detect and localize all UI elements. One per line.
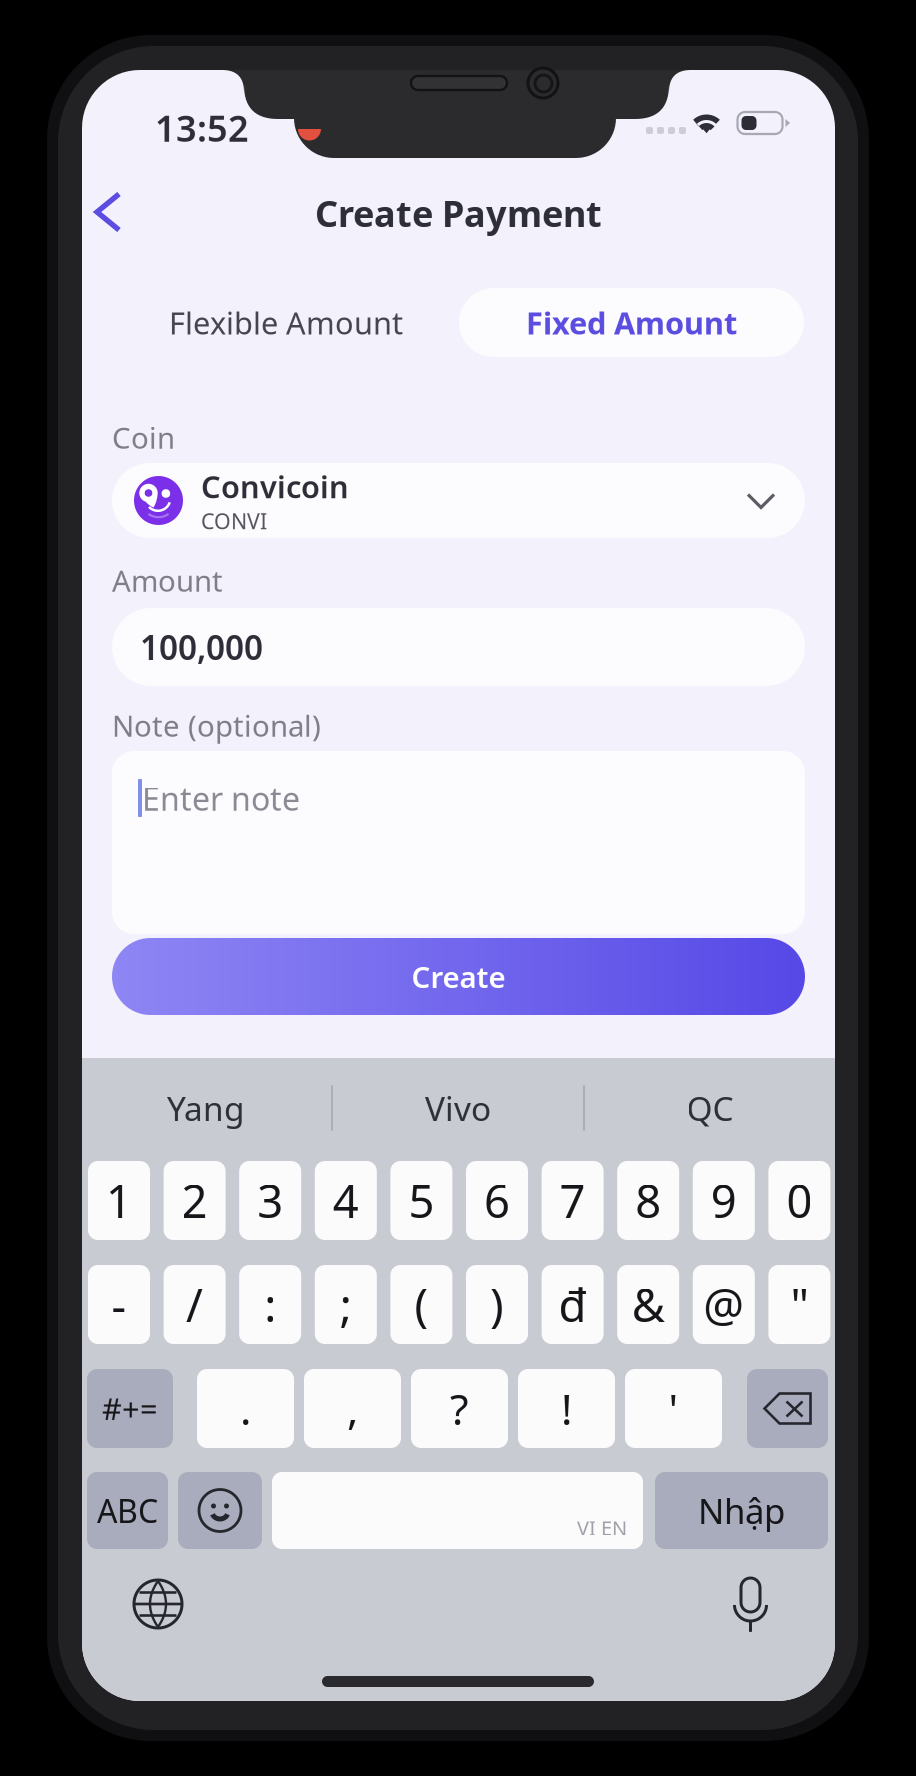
staticText: ABC: [97, 1489, 158, 1532]
button[interactable]: QC: [586, 1058, 834, 1158]
button[interactable]: !: [518, 1369, 615, 1448]
staticText: 7: [560, 1170, 586, 1231]
staticText: 6: [484, 1170, 510, 1231]
button[interactable]: 0: [768, 1161, 830, 1240]
staticText: Vivo: [425, 1086, 491, 1130]
button[interactable]: Convicoin: [112, 463, 805, 538]
staticText: 1: [106, 1170, 132, 1231]
button[interactable]: Back: [76, 173, 140, 251]
staticText: .: [240, 1380, 251, 1437]
staticText: /: [186, 1274, 203, 1335]
button[interactable]: ": [768, 1265, 830, 1344]
staticText: Flexible Amount: [169, 302, 403, 343]
button[interactable]: Yang: [82, 1058, 330, 1158]
staticText: QC: [686, 1086, 733, 1130]
staticText: Coin: [112, 418, 175, 457]
button[interactable]: Dictate: [727, 1574, 775, 1630]
staticText: ?: [450, 1380, 469, 1437]
staticText: VI EN: [577, 1514, 627, 1541]
button[interactable]: Switch keyboards: [134, 1580, 182, 1628]
staticText: :: [264, 1274, 276, 1335]
button[interactable]: :: [239, 1265, 301, 1344]
button[interactable]: Flexible Amount: [113, 288, 459, 357]
button[interactable]: ABC: [87, 1472, 168, 1549]
button[interactable]: Fixed Amount: [459, 288, 804, 357]
staticText: 3: [257, 1170, 283, 1231]
button[interactable]: 100,000: [112, 608, 805, 686]
button[interactable]: Enter note: [112, 751, 805, 934]
staticText: Fixed Amount: [526, 302, 737, 343]
staticText: 13:52: [155, 104, 249, 152]
staticText: 0: [786, 1170, 812, 1231]
button[interactable]: ,: [304, 1369, 401, 1448]
button[interactable]: 6: [466, 1161, 528, 1240]
button[interactable]: Emoji: [178, 1472, 262, 1549]
button[interactable]: 3: [239, 1161, 301, 1240]
button[interactable]: /: [164, 1265, 226, 1344]
button[interactable]: 7: [542, 1161, 604, 1240]
staticText: ;: [340, 1274, 352, 1335]
button[interactable]: ': [625, 1369, 722, 1448]
staticText: &: [632, 1274, 665, 1335]
staticText: Create Payment: [315, 189, 602, 237]
staticText: 5: [408, 1170, 434, 1231]
staticText: Nhập: [698, 1487, 785, 1533]
staticText: đ: [559, 1274, 587, 1335]
staticText: 8: [635, 1170, 661, 1231]
button[interactable]: #+=: [87, 1369, 173, 1448]
button[interactable]: (: [390, 1265, 452, 1344]
staticText: Yang: [167, 1086, 245, 1130]
button[interactable]: Vivo: [334, 1058, 582, 1158]
staticText: ": [790, 1274, 808, 1335]
button[interactable]: 2: [164, 1161, 226, 1240]
staticText: -: [111, 1274, 126, 1335]
staticText: Amount: [112, 561, 223, 600]
button[interactable]: Create: [112, 938, 805, 1015]
staticText: Create: [411, 957, 505, 996]
staticText: #+=: [102, 1388, 158, 1429]
staticText: 9: [711, 1170, 737, 1231]
button[interactable]: ): [466, 1265, 528, 1344]
button[interactable]: 4: [315, 1161, 377, 1240]
button[interactable]: @: [693, 1265, 755, 1344]
staticText: Enter note: [142, 777, 300, 819]
staticText: ': [668, 1380, 678, 1437]
button[interactable]: đ: [542, 1265, 604, 1344]
button[interactable]: 1: [88, 1161, 150, 1240]
staticText: ,: [347, 1380, 358, 1437]
button[interactable]: ;: [315, 1265, 377, 1344]
button[interactable]: &: [617, 1265, 679, 1344]
staticText: !: [561, 1380, 572, 1437]
button[interactable]: Nhập: [655, 1472, 828, 1549]
button[interactable]: -: [88, 1265, 150, 1344]
staticText: Convicoin: [201, 466, 349, 507]
staticText: 100,000: [140, 625, 263, 669]
staticText: @: [703, 1274, 744, 1335]
staticText: ): [490, 1274, 504, 1335]
staticText: Note (optional): [112, 706, 321, 745]
button[interactable]: 5: [390, 1161, 452, 1240]
staticText: (: [414, 1274, 428, 1335]
button[interactable]: Space: [272, 1472, 643, 1549]
button[interactable]: 9: [693, 1161, 755, 1240]
button[interactable]: .: [197, 1369, 294, 1448]
staticText: 4: [333, 1170, 359, 1231]
staticText: CONVI: [201, 507, 267, 535]
button[interactable]: 8: [617, 1161, 679, 1240]
button[interactable]: ?: [411, 1369, 508, 1448]
button[interactable]: Delete: [747, 1369, 828, 1448]
staticText: 2: [182, 1170, 208, 1231]
